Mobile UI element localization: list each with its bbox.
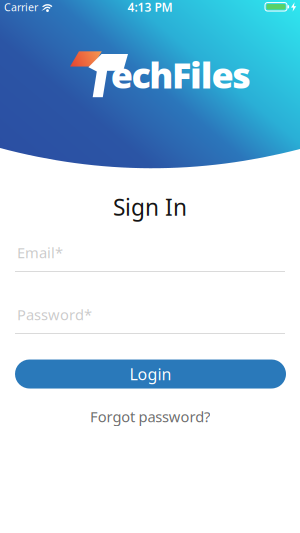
button[interactable]: Email* — [15, 246, 285, 273]
button[interactable]: Password* — [15, 308, 285, 335]
staticText: Login — [129, 363, 171, 385]
staticText: Carrier — [4, 0, 38, 14]
staticText: 4:13 PM — [127, 0, 172, 15]
staticText: Email* — [17, 243, 63, 262]
staticText: Password* — [17, 305, 92, 324]
button[interactable]: Forgot password? — [90, 403, 210, 430]
staticText: Forgot password? — [90, 407, 210, 426]
staticText: echFiles — [111, 51, 251, 98]
staticText: Sign In — [113, 192, 187, 222]
button[interactable]: Login — [15, 359, 286, 388]
